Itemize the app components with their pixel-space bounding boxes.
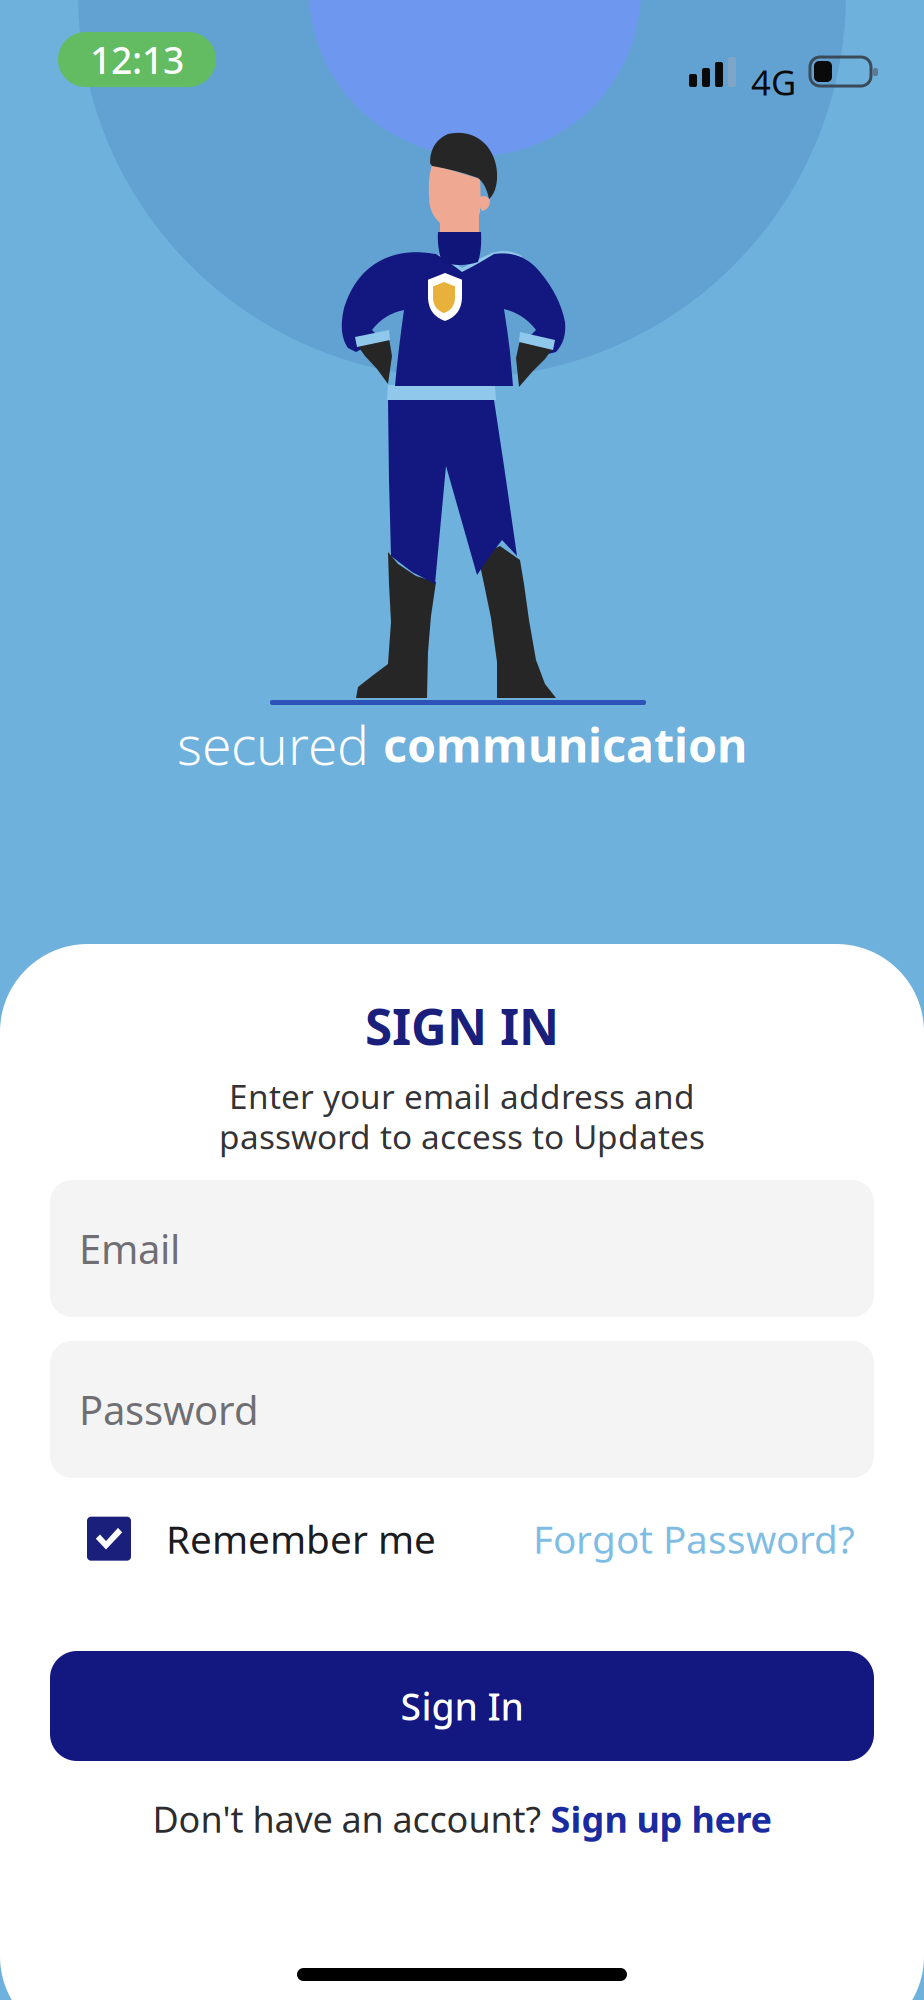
staticText: 12:13: [90, 35, 184, 84]
button[interactable]: Sign In: [50, 1651, 874, 1761]
staticText: Password: [79, 1383, 259, 1436]
staticText: password to access to Updates: [219, 1114, 705, 1159]
staticText: Enter your email address and: [229, 1074, 695, 1118]
button[interactable]: Remember me: [87, 1513, 436, 1564]
staticText: Sign In: [400, 1681, 523, 1731]
staticText: Forgot Password?: [533, 1513, 855, 1564]
staticText: Sign up here: [550, 1795, 771, 1843]
staticText: secured: [177, 709, 383, 780]
staticText: Email: [79, 1222, 180, 1275]
staticText: Remember me: [166, 1513, 436, 1564]
staticText: SIGN IN: [365, 993, 559, 1058]
staticText: communication: [383, 713, 747, 775]
staticText: 4G: [751, 59, 796, 105]
button[interactable]: Forgot Password?: [533, 1513, 855, 1564]
staticText: Don't have an account?: [152, 1795, 550, 1843]
button[interactable]: Don't have an account?: [0, 1795, 924, 1843]
